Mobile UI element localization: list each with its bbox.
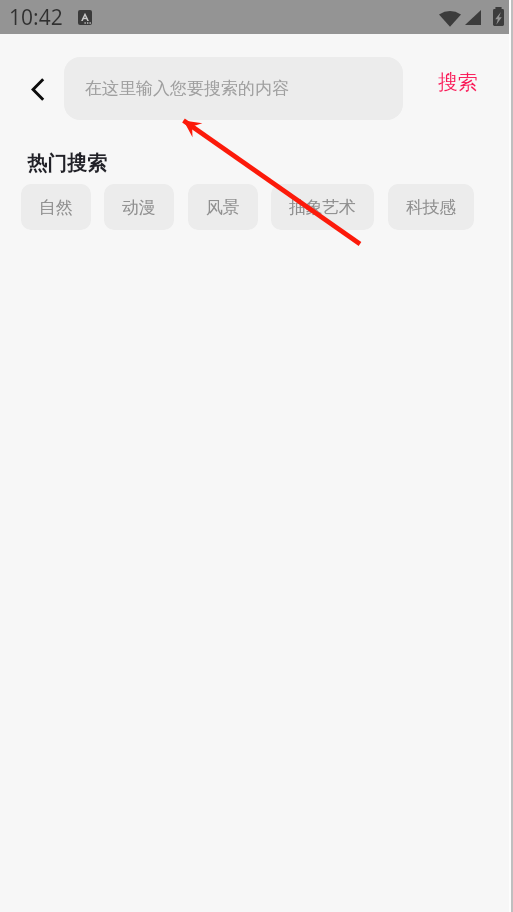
button[interactable]: 动漫 [104, 184, 174, 230]
staticText: 动漫 [122, 197, 156, 218]
button[interactable]: 科技感 [388, 184, 474, 230]
staticText: 搜索 [438, 70, 478, 95]
staticText: 风景 [206, 197, 240, 218]
staticText: 自然 [39, 197, 73, 218]
button[interactable]: 搜索 [403, 34, 513, 120]
button[interactable]: Back [0, 34, 64, 120]
button[interactable]: 自然 [21, 184, 91, 230]
staticText: 10:42 [9, 3, 63, 32]
button[interactable]: 抽象艺术 [271, 184, 374, 230]
staticText: 在这里输入您要搜索的内容 [85, 78, 289, 99]
button[interactable]: 风景 [188, 184, 258, 230]
staticText: 科技感 [406, 197, 456, 218]
staticText: 抽象艺术 [289, 197, 356, 218]
staticText: 热门搜索 [27, 151, 107, 176]
button[interactable]: 在这里输入您要搜索的内容 [64, 57, 403, 120]
